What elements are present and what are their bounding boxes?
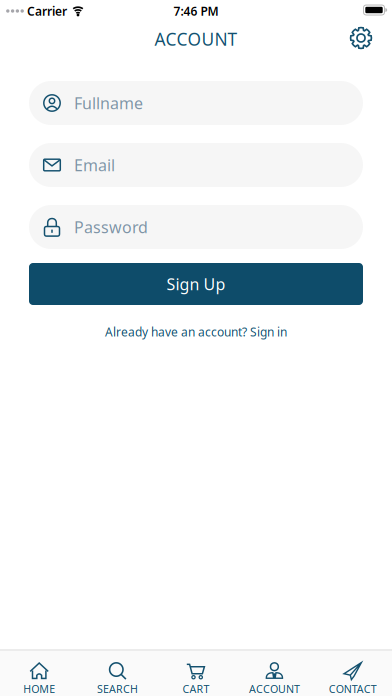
staticText: CONTACT xyxy=(329,682,377,696)
staticText: Fullname xyxy=(29,88,128,118)
staticText: CART xyxy=(182,682,209,696)
textField[interactable]: Fullname xyxy=(29,88,363,118)
staticText: Fullname xyxy=(74,92,143,114)
staticText: SEARCH xyxy=(97,682,138,696)
button[interactable]: ACCOUNT xyxy=(235,662,314,696)
button[interactable]: CONTACT xyxy=(314,662,392,696)
staticText: Password xyxy=(74,216,148,238)
staticText: Email xyxy=(74,154,115,176)
staticText: Email xyxy=(29,150,88,180)
textField[interactable]: Email xyxy=(29,150,363,180)
button[interactable]: HOME xyxy=(0,662,78,696)
staticText: ACCOUNT xyxy=(249,682,300,696)
staticText: ACCOUNT xyxy=(154,27,237,50)
staticText: Sign Up xyxy=(166,273,225,295)
button[interactable]: Sign Up xyxy=(29,263,363,305)
staticText: 7:46 PM xyxy=(173,3,218,19)
staticText: HOME xyxy=(23,682,55,696)
textField[interactable]: Password xyxy=(29,212,363,242)
button[interactable]: SEARCH xyxy=(78,662,157,696)
staticText: Password xyxy=(29,212,133,242)
staticText: Carrier xyxy=(27,3,67,19)
button[interactable]: Settings xyxy=(350,27,372,49)
button[interactable]: CART xyxy=(157,662,235,696)
staticText: Already have an account? Sign in xyxy=(105,324,287,340)
button[interactable]: Already have an account? Sign in xyxy=(105,324,287,340)
